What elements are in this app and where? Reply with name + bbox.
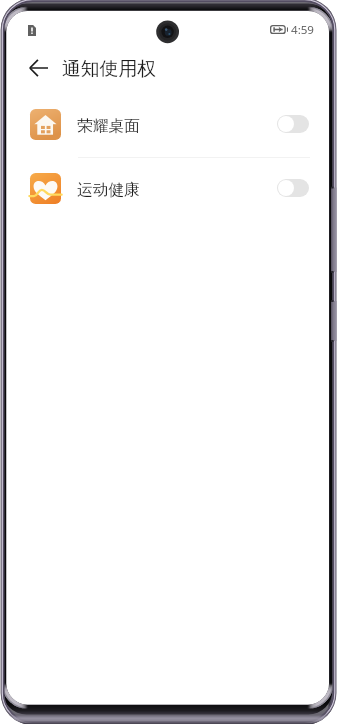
button[interactable]: Toggle notification access	[277, 179, 309, 197]
staticText: 荣耀桌面	[77, 116, 140, 136]
button[interactable]: Toggle notification access	[277, 115, 309, 133]
staticText: 通知使用权	[62, 57, 156, 81]
staticText: 运动健康	[77, 180, 140, 200]
staticText: 4:59	[291, 22, 315, 38]
button[interactable]: 荣耀桌面	[6, 92, 329, 156]
button[interactable]: 运动健康	[6, 156, 329, 220]
button[interactable]: Back	[22, 51, 55, 84]
